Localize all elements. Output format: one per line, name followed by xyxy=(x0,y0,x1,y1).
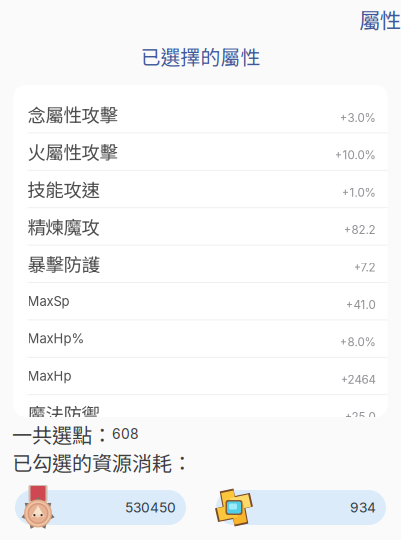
staticText: 已選擇的屬性 xyxy=(140,42,260,70)
button[interactable]: 暴擊防護 xyxy=(13,246,387,282)
button[interactable]: 934 xyxy=(216,486,386,528)
button[interactable]: 魔法防禦 xyxy=(13,395,387,432)
staticText: +8.0% xyxy=(339,335,375,349)
staticText: MaxHp xyxy=(27,368,71,384)
staticText: MaxHp% xyxy=(27,331,84,346)
staticText: 技能攻速 xyxy=(27,176,99,202)
button[interactable]: 念屬性攻擊 xyxy=(13,96,387,132)
button[interactable]: MaxHp% xyxy=(13,320,387,357)
staticText: +82.2 xyxy=(343,223,375,237)
staticText: +41.0 xyxy=(345,298,375,312)
staticText: 已勾選的資源消耗： xyxy=(12,447,192,477)
staticText: +1.0% xyxy=(341,185,375,199)
button[interactable]: 技能攻速 xyxy=(13,171,387,207)
staticText: 暴擊防護 xyxy=(27,250,99,277)
staticText: 魔法防禦 xyxy=(27,400,99,427)
staticText: +3.0% xyxy=(339,111,375,125)
staticText: 念屬性攻擊 xyxy=(27,101,117,127)
staticText: 精煉魔攻 xyxy=(27,213,99,240)
button[interactable]: 火屬性攻擊 xyxy=(13,133,387,170)
staticText: 530450 xyxy=(125,499,176,516)
staticText: +10.0% xyxy=(334,148,375,162)
button[interactable]: 530450 xyxy=(15,486,186,528)
staticText: 屬性 xyxy=(359,4,401,34)
staticText: MaxSp xyxy=(27,293,69,309)
staticText: 608 xyxy=(112,426,139,442)
button[interactable]: 精煉魔攻 xyxy=(13,208,387,245)
button[interactable]: 屬性 xyxy=(359,6,401,32)
staticText: 934 xyxy=(350,499,376,516)
staticText: 火屬性攻擊 xyxy=(27,138,117,165)
button[interactable]: MaxSp xyxy=(13,283,387,319)
staticText: +2464 xyxy=(340,372,375,386)
staticText: +7.2 xyxy=(353,260,375,274)
button[interactable]: MaxHp xyxy=(13,358,387,394)
staticText: +25.0 xyxy=(344,410,375,424)
staticText: 一共選點： xyxy=(12,419,112,449)
